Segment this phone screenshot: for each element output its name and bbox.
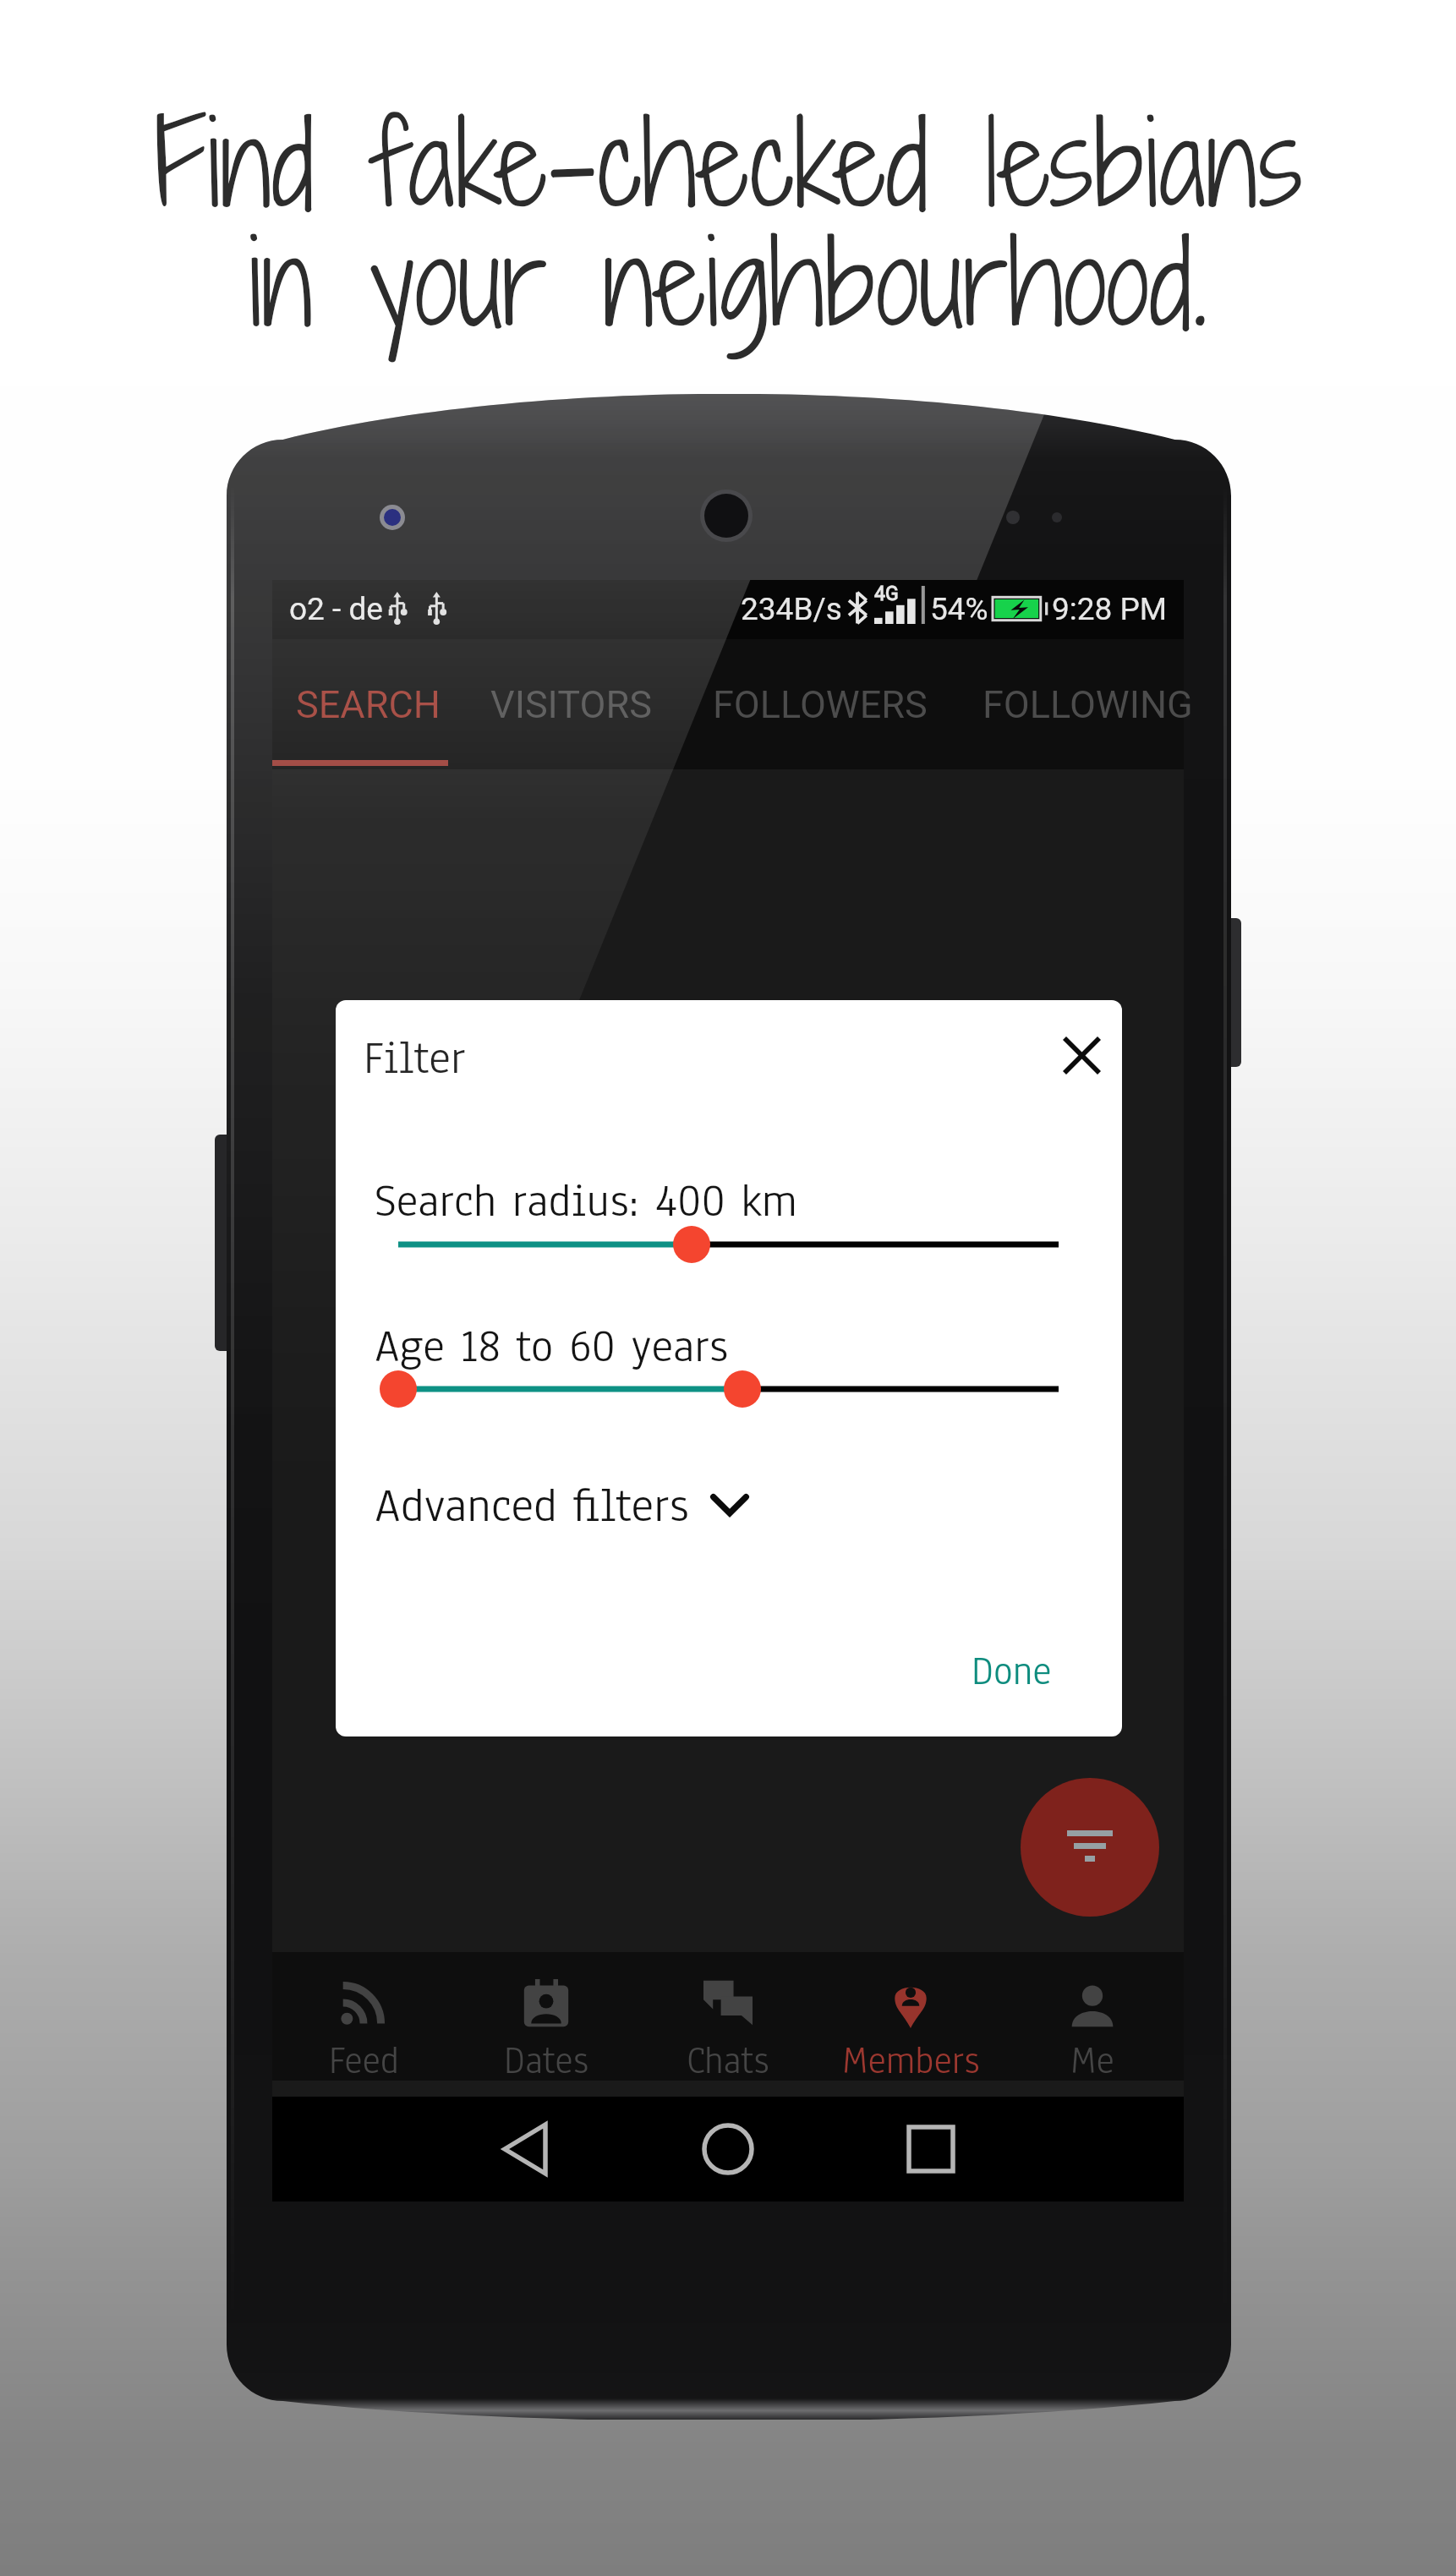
staticText: 234B/s [741,591,842,627]
staticText: 9:28 PM [1052,591,1168,627]
button[interactable]: Me [1001,1952,1184,2081]
staticText: FOLLOWING [983,682,1193,727]
button[interactable]: Done [972,1645,1052,1698]
button[interactable]: SEARCH [286,639,450,769]
button[interactable]: FOLLOWING [961,639,1214,769]
button[interactable]: Dates [455,1952,638,2081]
button[interactable]: Close [1037,1011,1122,1099]
button[interactable]: Feed [272,1952,455,2081]
staticText: FOLLOWERS [713,682,928,727]
staticText: o2 - de [289,591,383,627]
staticText: 4G [874,582,899,605]
staticText: Me [1070,2036,1114,2086]
staticText: Chats [687,2036,769,2086]
button[interactable]: Advanced filters [375,1474,748,1537]
staticText: Members [842,2036,980,2086]
staticText: Find fake-checked lesbians in your neigh… [0,81,1456,363]
staticText: VISITORS [490,682,652,727]
staticText: 54% [930,591,988,627]
staticText: Search radius: 400 km [375,1170,797,1231]
button[interactable]: VISITORS [463,639,678,769]
button[interactable]: Chats [637,1952,819,2081]
button[interactable]: Members [819,1952,1002,2081]
staticText: SEARCH [296,682,441,727]
staticText: Advanced filters [375,1474,689,1537]
button[interactable]: FOLLOWERS [692,639,949,769]
staticText: Filter [364,1027,466,1088]
staticText: Feed [329,2036,399,2086]
button[interactable]: Filter [1021,1778,1159,1917]
staticText: Age 18 to 60 years [375,1315,729,1376]
staticText: Dates [504,2036,589,2086]
